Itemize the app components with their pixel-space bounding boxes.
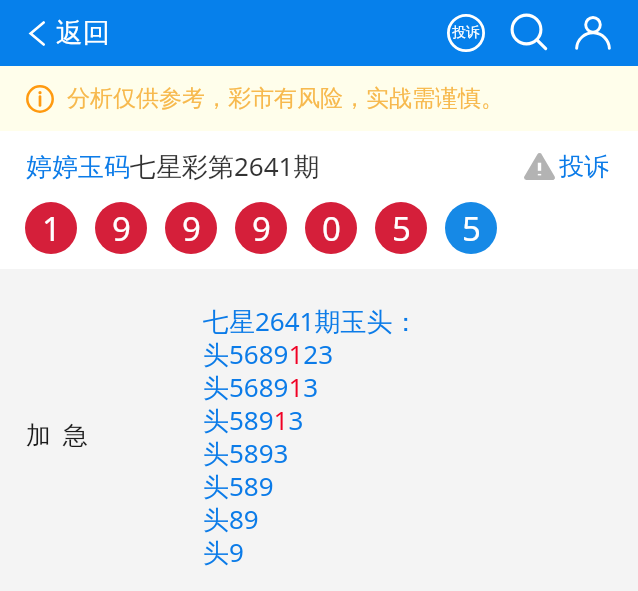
- button[interactable]: 投诉: [524, 151, 609, 182]
- staticText: 婷婷玉码七星彩第2641期: [26, 148, 320, 184]
- staticText: 加: [26, 420, 51, 451]
- staticText: 0: [322, 206, 341, 251]
- staticText: 头58913: [203, 402, 304, 435]
- staticText: 9: [182, 206, 201, 251]
- staticText: 9: [252, 206, 271, 251]
- button[interactable]: 搜索: [506, 10, 552, 56]
- staticText: 5: [462, 206, 481, 251]
- button[interactable]: 投诉: [443, 10, 489, 56]
- staticText: 头568913: [203, 369, 319, 402]
- staticText: 七星2641期玉头：: [203, 303, 419, 336]
- button[interactable]: 婷婷玉码七星彩第2641期: [26, 148, 320, 184]
- button[interactable]: 我的: [571, 10, 617, 56]
- staticText: 头589: [203, 468, 274, 501]
- staticText: 急: [63, 420, 88, 451]
- staticText: 返回: [56, 16, 110, 50]
- staticText: 头5893: [203, 435, 289, 468]
- staticText: 9: [112, 206, 131, 251]
- staticText: 分析仅供参考，彩市有风险，实战需谨慎。: [67, 84, 504, 113]
- staticText: 头9: [203, 534, 244, 567]
- button[interactable]: 加: [0, 269, 638, 591]
- staticText: 头89: [203, 501, 259, 534]
- button[interactable]: 返回: [0, 8, 118, 58]
- staticText: 投诉: [452, 24, 480, 42]
- staticText: 投诉: [559, 151, 609, 182]
- staticText: 头5689123: [203, 336, 334, 369]
- staticText: 5: [392, 206, 411, 251]
- staticText: 1: [42, 206, 61, 251]
